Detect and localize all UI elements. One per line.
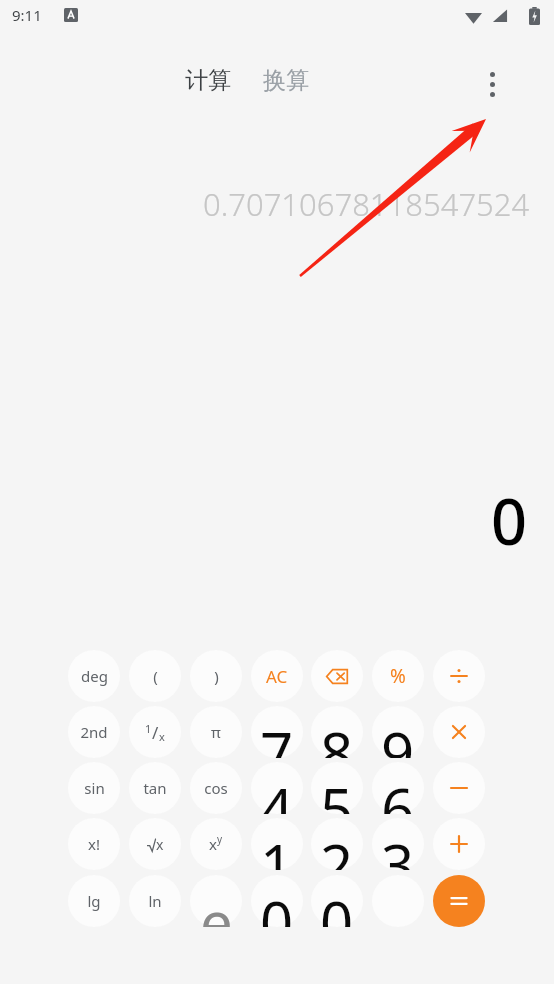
staticText: 2nd: [80, 722, 108, 742]
button[interactable]: [68, 650, 120, 702]
button[interactable]: Plus: [433, 818, 485, 870]
button[interactable]: %: [372, 650, 424, 702]
staticText: 0: [491, 478, 528, 564]
button[interactable]: 6: [364, 762, 432, 814]
button[interactable]: [251, 875, 303, 927]
button[interactable]: x: [129, 818, 181, 870]
staticText: y: [217, 832, 223, 846]
button[interactable]: AC: [251, 650, 303, 702]
button[interactable]: [433, 875, 485, 927]
button[interactable]: [311, 875, 363, 927]
button[interactable]: [311, 818, 363, 870]
staticText: 5: [320, 769, 354, 814]
button[interactable]: tan: [129, 762, 181, 814]
staticText: 2: [320, 825, 354, 870]
staticText: x!: [88, 834, 100, 854]
button[interactable]: 8: [303, 706, 371, 758]
button[interactable]: ln: [129, 875, 181, 927]
button[interactable]: [311, 762, 363, 814]
button[interactable]: [68, 762, 120, 814]
button[interactable]: [433, 650, 485, 702]
button[interactable]: deg: [68, 650, 120, 702]
button[interactable]: 2: [303, 818, 371, 870]
staticText: x: [159, 729, 165, 744]
button[interactable]: Minus: [433, 762, 485, 814]
button[interactable]: [190, 875, 242, 927]
staticText: 换算: [263, 66, 309, 95]
button[interactable]: [129, 650, 181, 702]
button[interactable]: [190, 762, 242, 814]
button[interactable]: Backspace: [311, 650, 363, 702]
button[interactable]: [129, 875, 181, 927]
staticText: π: [211, 722, 221, 742]
staticText: 8: [320, 713, 354, 758]
staticText: 1: [260, 825, 294, 870]
button[interactable]: 1: [243, 818, 311, 870]
button[interactable]: [68, 706, 120, 758]
staticText: deg: [81, 666, 108, 686]
button[interactable]: lg: [68, 875, 120, 927]
button[interactable]: [433, 818, 485, 870]
staticText: 9:11: [12, 5, 42, 25]
button[interactable]: More options: [470, 62, 514, 106]
button[interactable]: [190, 875, 242, 927]
staticText: 9: [381, 713, 415, 758]
button[interactable]: [372, 706, 424, 758]
button[interactable]: Divide: [433, 650, 485, 702]
button[interactable]: Multiply: [433, 706, 485, 758]
button[interactable]: [251, 650, 303, 702]
button[interactable]: [129, 706, 181, 758]
button[interactable]: [251, 762, 303, 814]
button[interactable]: 0: [303, 875, 371, 927]
button[interactable]: [129, 818, 181, 870]
button[interactable]: 换算: [261, 66, 311, 95]
button[interactable]: 4: [243, 762, 311, 814]
staticText: 4: [260, 769, 294, 814]
button[interactable]: [190, 706, 242, 758]
button[interactable]: Equals: [433, 875, 485, 927]
staticText: sin: [84, 778, 105, 798]
staticText: AC: [266, 665, 288, 688]
staticText: (: [153, 666, 158, 686]
button[interactable]: [311, 706, 363, 758]
button[interactable]: (: [129, 650, 181, 702]
staticText: /: [152, 721, 159, 744]
button[interactable]: [68, 875, 120, 927]
button[interactable]: 2nd: [68, 706, 120, 758]
staticText: e: [200, 882, 233, 927]
staticText: 0.70710678118547524: [203, 183, 530, 225]
button[interactable]: [68, 818, 120, 870]
staticText: 1: [145, 721, 152, 736]
button[interactable]: 9: [364, 706, 432, 758]
staticText: ln: [148, 891, 162, 911]
button[interactable]: [433, 762, 485, 814]
staticText: 3: [381, 825, 415, 870]
button[interactable]: [251, 818, 303, 870]
button[interactable]: [129, 762, 181, 814]
button[interactable]: sin: [68, 762, 120, 814]
button[interactable]: [251, 706, 303, 758]
button[interactable]: [433, 706, 485, 758]
button[interactable]: ): [190, 650, 242, 702]
button[interactable]: [190, 818, 242, 870]
staticText: 计算: [185, 66, 231, 95]
button[interactable]: 0: [243, 875, 311, 927]
button[interactable]: 计算: [183, 66, 233, 95]
button[interactable]: 3: [364, 818, 432, 870]
button[interactable]: x: [190, 818, 242, 870]
button[interactable]: 5: [303, 762, 371, 814]
button[interactable]: [372, 650, 424, 702]
staticText: 0: [320, 882, 354, 927]
button[interactable]: cos: [190, 762, 242, 814]
button[interactable]: [372, 762, 424, 814]
button[interactable]: 1: [129, 706, 181, 758]
button[interactable]: π: [190, 706, 242, 758]
button[interactable]: 7: [243, 706, 311, 758]
staticText: %: [390, 663, 406, 689]
button[interactable]: [372, 818, 424, 870]
button[interactable]: [190, 650, 242, 702]
button[interactable]: e: [182, 875, 250, 927]
button[interactable]: [311, 650, 363, 702]
button[interactable]: x!: [68, 818, 120, 870]
